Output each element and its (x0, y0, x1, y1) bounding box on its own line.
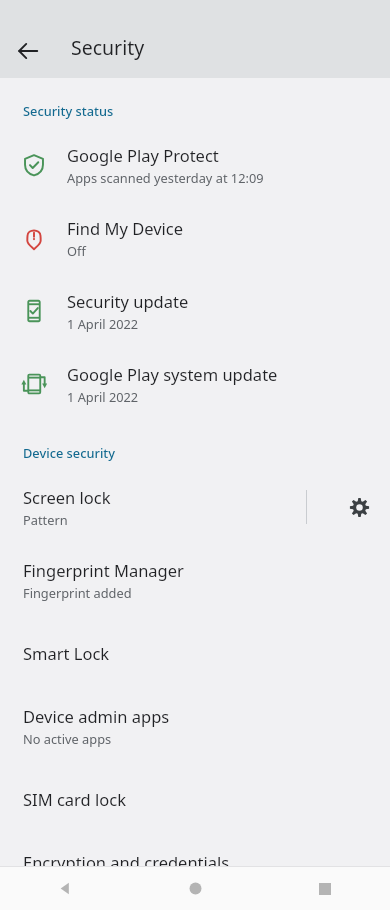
staticText: Off (67, 242, 86, 259)
button[interactable]: Screen lock (0, 470, 306, 543)
staticText: Find My Device (67, 217, 184, 239)
button[interactable]: Google Play system update (0, 347, 390, 420)
staticText: SIM card lock (23, 788, 126, 810)
staticText: Google Play system update (67, 363, 278, 385)
button[interactable]: Screen lock settings (337, 485, 381, 529)
staticText: Apps scanned yesterday at 12:09 (67, 169, 264, 186)
staticText: Fingerprint added (23, 584, 132, 601)
button[interactable]: Back (6, 29, 50, 73)
staticText: Security (71, 34, 145, 61)
button[interactable]: Device admin apps (0, 689, 390, 762)
staticText: 1 April 2022 (67, 315, 139, 332)
staticText: Encrypted (23, 876, 84, 893)
staticText: Device security (23, 444, 115, 461)
staticText: 1 April 2022 (67, 388, 139, 405)
button[interactable]: Recent apps (260, 867, 390, 910)
staticText: Google Play Protect (67, 144, 219, 166)
staticText: Fingerprint Manager (23, 559, 184, 581)
button[interactable]: Home (130, 867, 260, 910)
staticText: Screen lock (23, 486, 111, 508)
button[interactable]: Google Play Protect (0, 128, 390, 201)
staticText: Smart Lock (23, 642, 110, 664)
staticText: No active apps (23, 730, 112, 747)
staticText: Pattern (23, 511, 68, 528)
button[interactable]: Encryption and credentials (0, 835, 390, 908)
button[interactable]: Fingerprint Manager (0, 543, 390, 616)
button[interactable]: Back (0, 867, 130, 910)
button[interactable]: Security update (0, 274, 390, 347)
staticText: Security update (67, 290, 189, 312)
button[interactable]: SIM card lock (0, 762, 390, 835)
staticText: Security status (23, 102, 114, 119)
staticText: Device admin apps (23, 705, 170, 727)
button[interactable]: Find My Device (0, 201, 390, 274)
button[interactable]: Smart Lock (0, 616, 390, 689)
staticText: Encryption and credentials (23, 851, 230, 873)
